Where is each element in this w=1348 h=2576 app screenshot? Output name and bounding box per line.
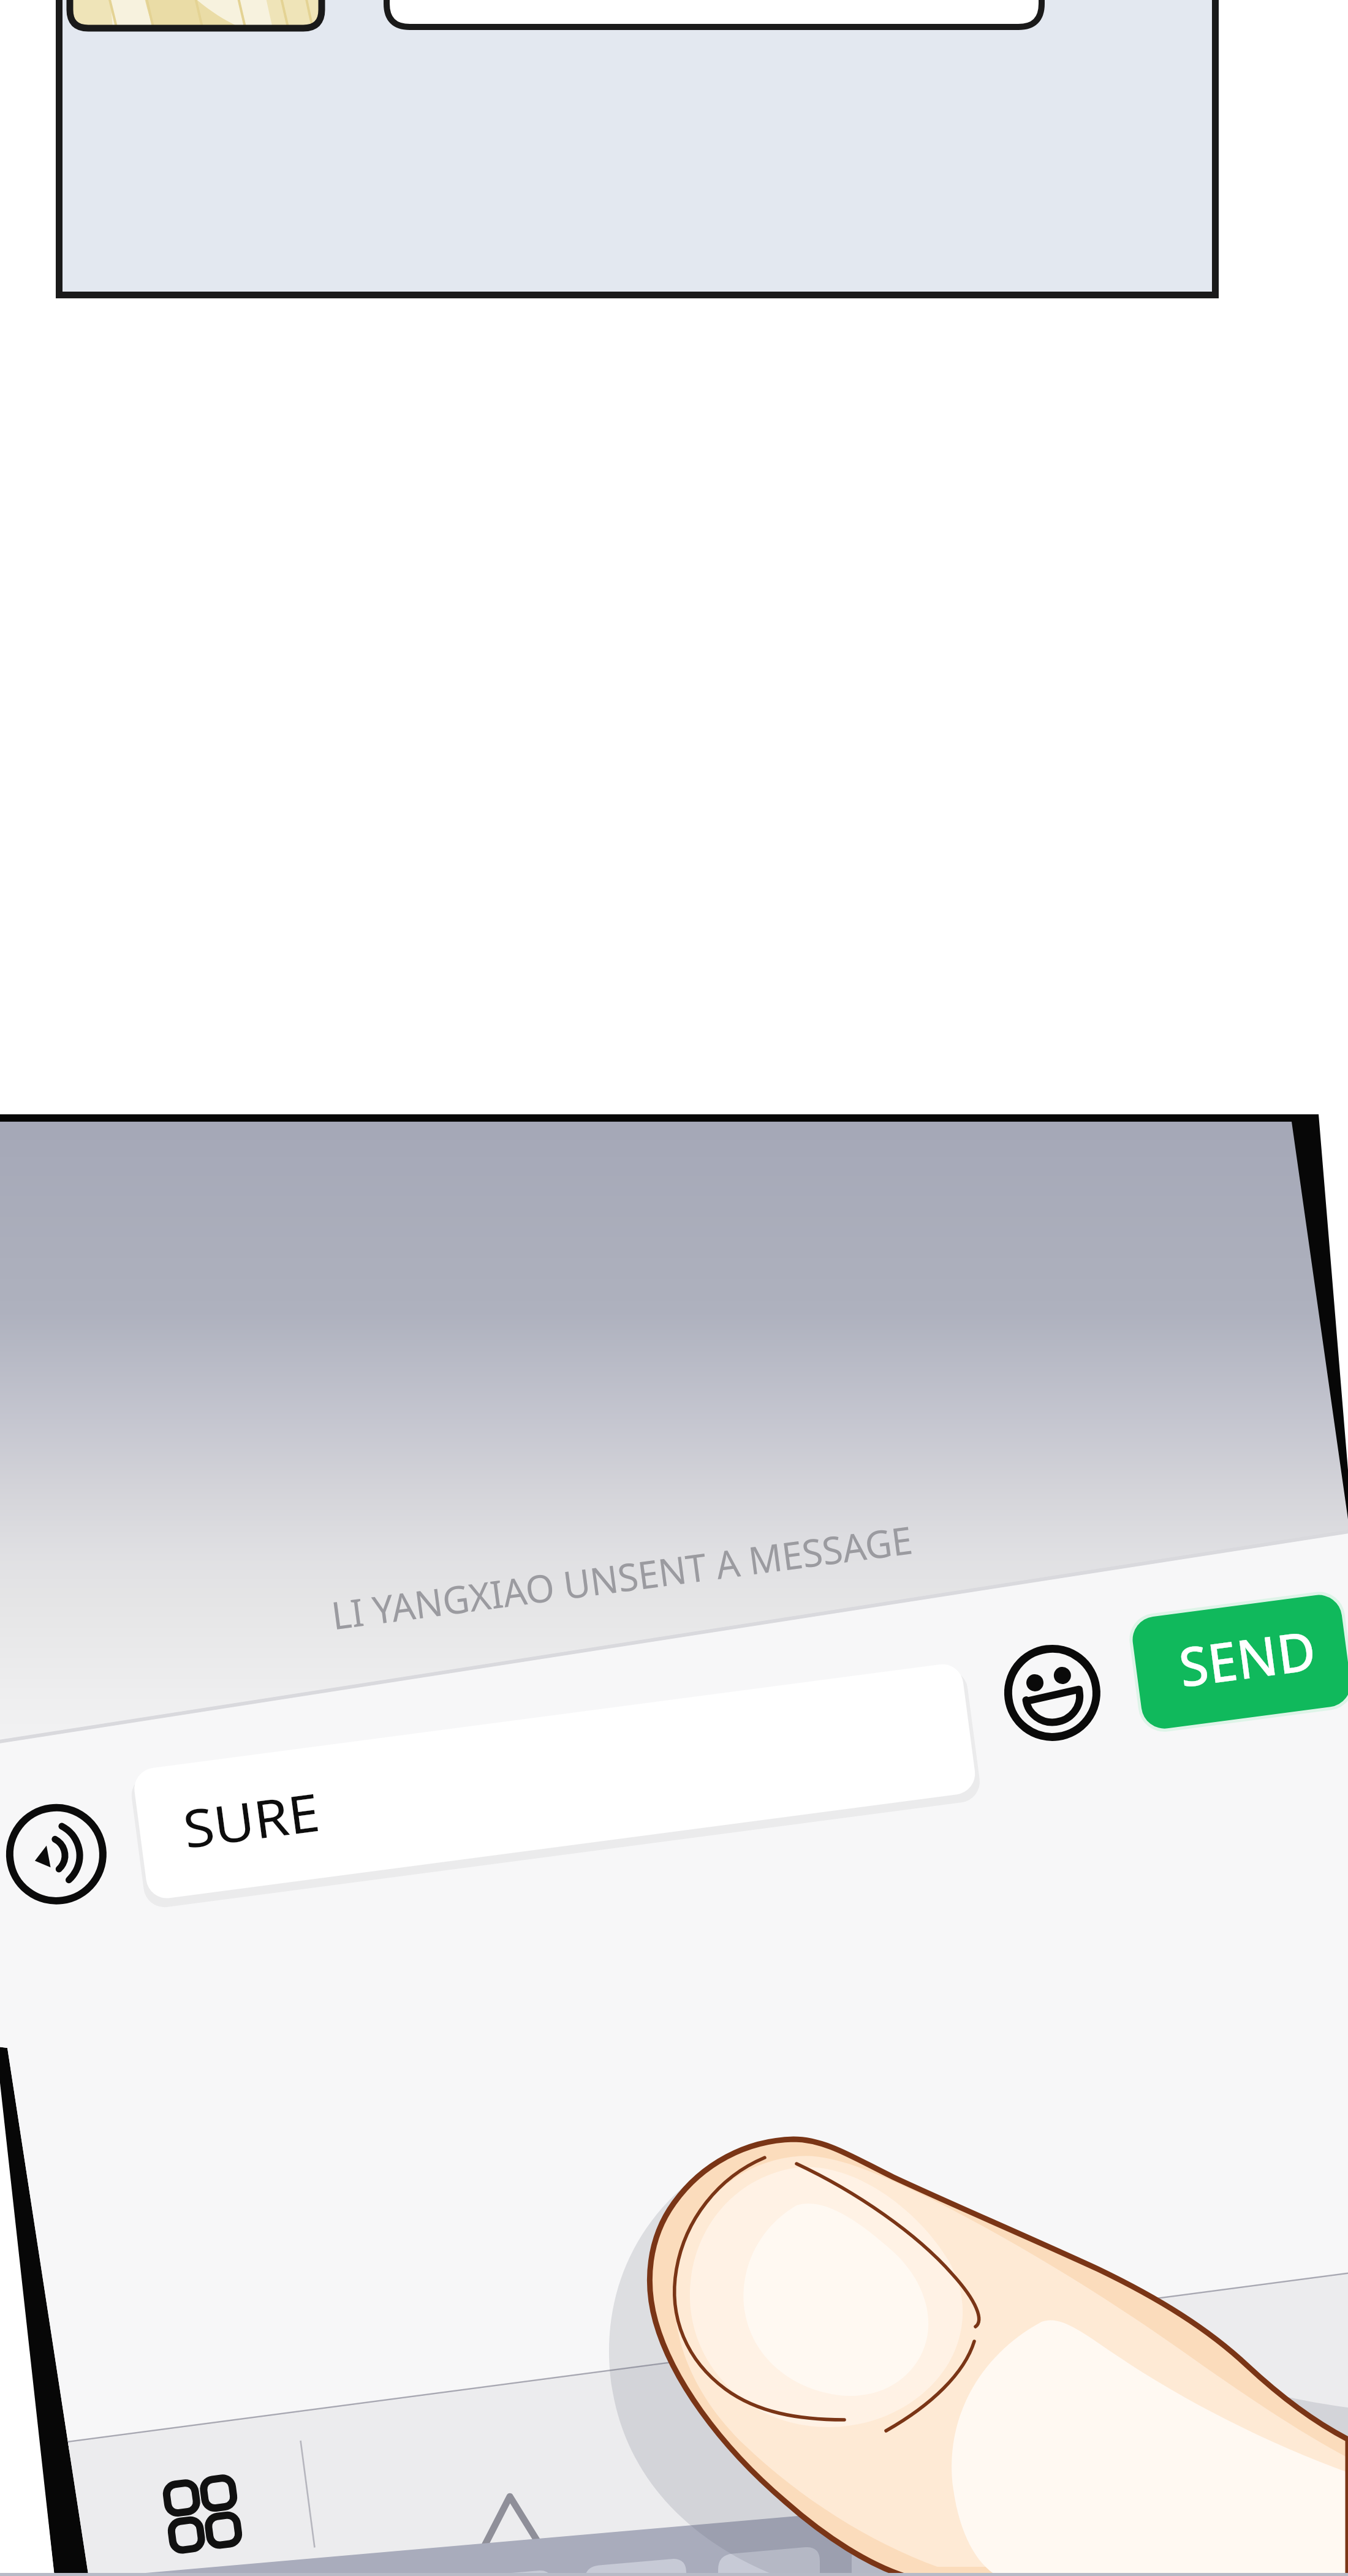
staticText: SURE <box>179 1775 323 1864</box>
button[interactable]: SURE <box>179 1775 323 1864</box>
button[interactable]: SEND <box>1175 1612 1320 1703</box>
button[interactable]: Emoji <box>999 1639 1106 1746</box>
staticText: LI YANGXIAO UNSENT A MESSAGE <box>328 1513 916 1641</box>
button[interactable]: Apps <box>145 2451 258 2564</box>
staticText: SEND <box>1175 1612 1320 1703</box>
button[interactable]: Voice message <box>2 1801 110 1908</box>
button[interactable]: Back <box>450 2472 564 2576</box>
